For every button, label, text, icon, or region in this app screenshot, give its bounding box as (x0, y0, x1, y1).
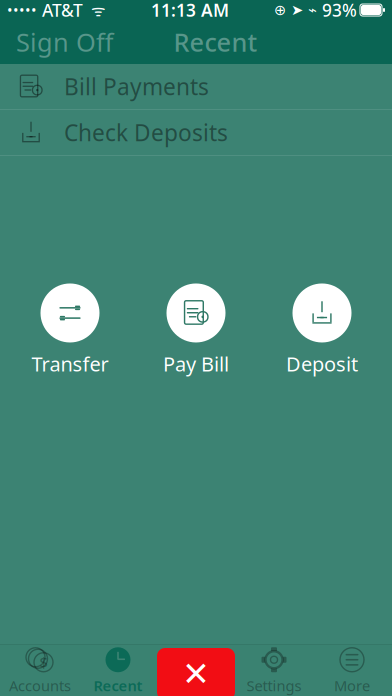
staticText: ••••• (7, 0, 37, 20)
button[interactable]: Recent (79, 645, 157, 695)
staticText: Check Deposits (64, 117, 228, 147)
button[interactable]: Pay Bill (141, 283, 251, 377)
staticText: 93% (317, 0, 357, 21)
staticText: $ (39, 652, 47, 672)
button[interactable]: Bill Payments (0, 64, 392, 110)
staticText: ⊕ ➤ ⌁ (274, 2, 317, 18)
button[interactable]: Settings (235, 645, 313, 695)
button[interactable]: Sign Off (0, 20, 129, 64)
staticText: AT&T (37, 0, 83, 21)
staticText: ᯤ (83, 0, 106, 21)
button[interactable]: Transfer (15, 283, 125, 377)
button[interactable]: Check Deposits (0, 110, 392, 156)
staticText: ✕ (182, 655, 210, 693)
staticText: Pay Bill (163, 350, 229, 377)
staticText: Transfer (31, 350, 108, 377)
staticText: Sign Off (16, 25, 113, 59)
button[interactable]: Deposit (267, 283, 377, 377)
staticText: Recent (173, 25, 257, 59)
staticText: More (334, 676, 370, 695)
staticText: Settings (246, 676, 301, 695)
staticText: Deposit (286, 350, 358, 377)
staticText: 11:13 AM (151, 0, 229, 21)
button[interactable]: More (313, 645, 391, 695)
button[interactable]: $ (1, 645, 79, 695)
button[interactable]: Close (157, 648, 235, 696)
staticText: Accounts (9, 676, 71, 695)
staticText: Recent (93, 676, 142, 695)
staticText: Bill Payments (64, 71, 209, 101)
